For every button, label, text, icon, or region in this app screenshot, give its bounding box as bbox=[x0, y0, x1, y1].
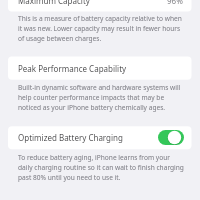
staticText: 96% bbox=[167, 0, 183, 6]
button[interactable]: Peak Performance Capability bbox=[8, 57, 192, 80]
staticText: To reduce battery aging, iPhone learns f… bbox=[18, 153, 185, 181]
button[interactable]: Optimized Battery Charging, on bbox=[158, 130, 184, 145]
staticText: Optimized Battery Charging bbox=[18, 132, 123, 143]
button[interactable]: Maximum Capacity bbox=[8, 0, 192, 12]
staticText: Maximum Capacity bbox=[18, 0, 90, 6]
button[interactable]: Optimized Battery Charging bbox=[8, 126, 192, 149]
staticText: Built-in dynamic software and hardware s… bbox=[18, 83, 185, 111]
staticText: This is a measure of battery capacity re… bbox=[18, 14, 185, 42]
staticText: Peak Performance Capability bbox=[18, 63, 127, 74]
